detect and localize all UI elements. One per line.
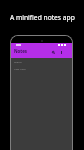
staticText: Search — [14, 60, 22, 63]
staticText: A minified notes app — [10, 13, 75, 22]
button[interactable]: Search — [51, 50, 56, 55]
staticText: New Note — [14, 67, 26, 70]
button[interactable]: More options — [59, 50, 64, 55]
staticText: Notes — [14, 48, 28, 54]
button[interactable]: New Note — [11, 66, 72, 71]
button[interactable]: Search — [11, 59, 72, 64]
